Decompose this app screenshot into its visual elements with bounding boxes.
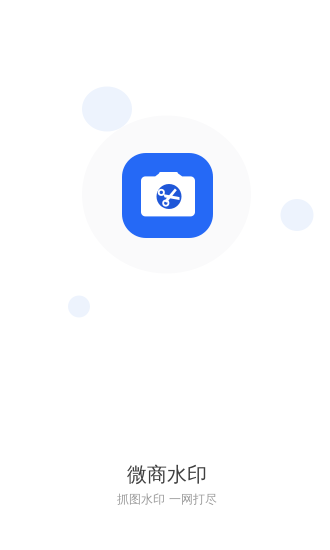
staticText: 抓图水印 一网打尽 [117,492,217,507]
staticText: 微商水印 [127,462,207,487]
